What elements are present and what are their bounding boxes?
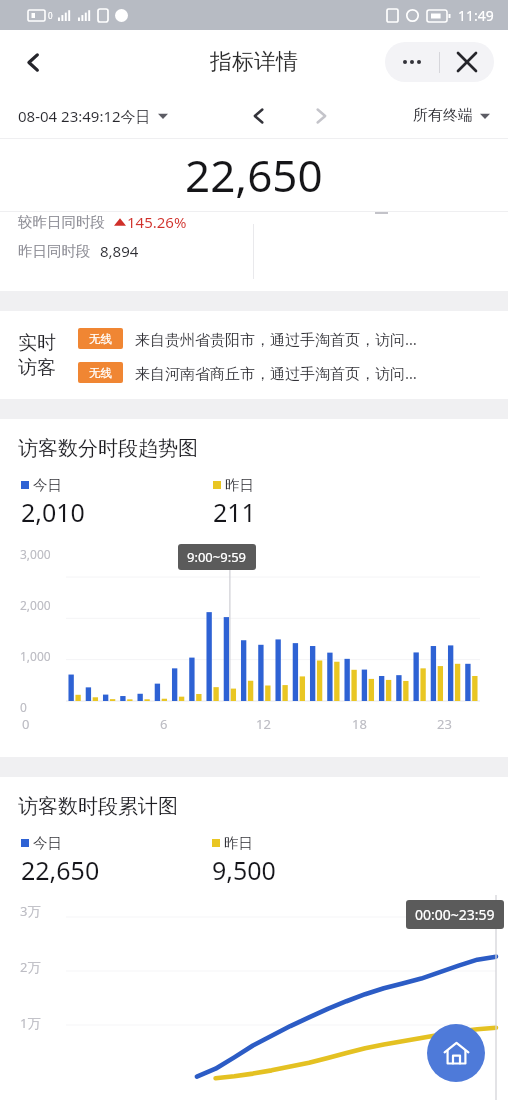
staticText: 指标详情 [210, 48, 298, 76]
staticText: 8,894 [100, 241, 139, 261]
staticText: 00:00~23:59 [415, 905, 495, 924]
staticText: 访客数分时段趋势图 [18, 436, 198, 461]
staticText: 无线 [89, 366, 112, 380]
staticText: 访客 [18, 356, 56, 380]
staticText: 08-04 23:49:12今日 [18, 106, 151, 126]
button[interactable]: Previous period [238, 95, 280, 137]
button[interactable]: Close [440, 42, 494, 82]
staticText: 较昨日同时段 [18, 213, 105, 231]
staticText: 145.26% [127, 212, 187, 232]
staticText: 11:49 [458, 6, 494, 25]
staticText: 12 [256, 715, 271, 733]
staticText: 今日 [33, 476, 62, 494]
button[interactable]: 无线 [78, 362, 498, 383]
button[interactable]: Next period [300, 95, 342, 137]
staticText: 18 [352, 715, 367, 733]
staticText: 昨日 [225, 476, 254, 494]
staticText: 实时 [18, 331, 56, 355]
staticText: 23 [437, 715, 452, 733]
staticText: 0 [22, 715, 30, 733]
button[interactable]: Back [10, 39, 56, 85]
button[interactable]: 08-04 23:49:12今日 [18, 106, 168, 126]
staticText: 22,650 [21, 853, 100, 887]
staticText: 来自贵州省贵阳市，通过手淘首页，访问… [135, 329, 417, 349]
staticText: 9:00~9:59 [187, 548, 247, 566]
staticText: 1万 [20, 1014, 41, 1032]
staticText: 1,000 [20, 648, 51, 664]
staticText: 今日 [33, 834, 62, 852]
staticText: 3,000 [20, 546, 51, 562]
staticText: 所有终端 [413, 106, 473, 125]
staticText: 访客数时段累计图 [18, 794, 178, 819]
staticText: 无线 [89, 332, 112, 346]
button[interactable]: More options [385, 42, 439, 82]
button[interactable]: 无线 [78, 328, 498, 349]
staticText: 3万 [20, 902, 41, 920]
staticText: 0 [20, 699, 27, 715]
staticText: 2万 [20, 958, 41, 976]
staticText: 2,000 [20, 597, 51, 613]
staticText: 来自河南省商丘市，通过手淘首页，访问… [135, 363, 417, 383]
staticText: 0 [48, 10, 53, 21]
button[interactable]: Home [427, 1024, 485, 1082]
button[interactable]: 所有终端 [413, 106, 490, 125]
staticText: 6 [160, 715, 168, 733]
staticText: 昨日 [224, 834, 253, 852]
staticText: 22,650 [185, 145, 323, 205]
staticText: 9,500 [212, 853, 276, 887]
staticText: 2,010 [21, 495, 85, 529]
staticText: 211 [213, 495, 256, 529]
staticText: 昨日同时段 [18, 242, 91, 260]
